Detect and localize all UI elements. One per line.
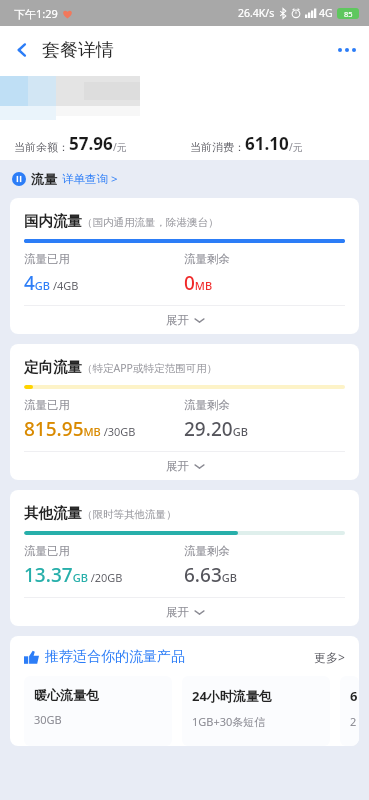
staticText: 当前余额： <box>14 140 69 154</box>
button[interactable]: 6.9元2 <box>340 676 359 746</box>
staticText: 24小时流量包 <box>192 687 272 705</box>
button[interactable]: 当前余额： <box>14 132 127 155</box>
staticText: 下午1:29 <box>14 6 58 21</box>
staticText: 详单查询 > <box>62 171 118 187</box>
button[interactable]: 更多> <box>314 649 345 665</box>
staticText: 流量 <box>31 171 57 187</box>
staticText: （特定APP或特定范围可用） <box>82 361 217 375</box>
button[interactable]: 当前消费： <box>190 132 303 155</box>
button[interactable]: 国内流量 <box>10 198 359 334</box>
staticText: 定向流量 <box>24 358 82 376</box>
button[interactable]: 展开 <box>10 452 359 480</box>
button[interactable]: 24小时流量包 <box>182 676 330 746</box>
staticText: 6.63GB <box>184 562 237 588</box>
staticText: 85 <box>344 9 353 19</box>
staticText: 815.95MB /30GB <box>24 416 136 442</box>
button[interactable]: More options <box>325 28 369 72</box>
staticText: 流量已用 <box>24 252 70 266</box>
button[interactable]: 展开 <box>10 598 359 626</box>
staticText: 2GB5天 <box>350 714 359 729</box>
staticText: /元 <box>289 140 303 154</box>
button[interactable]: 定向流量 <box>10 344 359 480</box>
staticText: 流量剩余 <box>184 252 230 266</box>
staticText: /元 <box>113 140 127 154</box>
staticText: 流量剩余 <box>184 544 230 558</box>
staticText: 暖心流量包 <box>34 687 99 703</box>
staticText: 展开 <box>166 313 189 327</box>
staticText: 国内流量 <box>24 212 82 230</box>
staticText: 57.96 <box>69 132 113 155</box>
staticText: （国内通用流量，除港澳台） <box>82 216 219 229</box>
staticText: 流量已用 <box>24 398 70 412</box>
staticText: 29.20GB <box>184 416 248 442</box>
staticText: 30GB <box>34 712 62 727</box>
staticText: 0MB <box>184 270 213 296</box>
button[interactable]: Back <box>0 28 44 72</box>
staticText: 流量剩余 <box>184 398 230 412</box>
button[interactable]: 流量 <box>0 166 369 192</box>
staticText: 当前消费： <box>190 140 245 154</box>
staticText: 26.4K/s <box>238 6 275 20</box>
staticText: 4GB /4GB <box>24 270 79 296</box>
staticText: 6.9元2 <box>350 687 359 705</box>
staticText: 展开 <box>166 459 189 473</box>
staticText: 流量已用 <box>24 544 70 558</box>
button[interactable]: 展开 <box>10 306 359 334</box>
button[interactable]: 其他流量 <box>10 490 359 626</box>
staticText: 4G <box>319 6 333 20</box>
staticText: 套餐详情 <box>42 39 114 62</box>
staticText: （限时等其他流量） <box>82 508 177 521</box>
staticText: 13.37GB /20GB <box>24 562 123 588</box>
staticText: 展开 <box>166 605 189 619</box>
button[interactable]: 暖心流量包 <box>24 676 172 746</box>
staticText: 推荐适合你的流量产品 <box>45 648 185 666</box>
staticText: 其他流量 <box>24 504 82 522</box>
staticText: 1GB+30条短信 <box>192 714 266 729</box>
staticText: 61.10 <box>245 132 289 155</box>
